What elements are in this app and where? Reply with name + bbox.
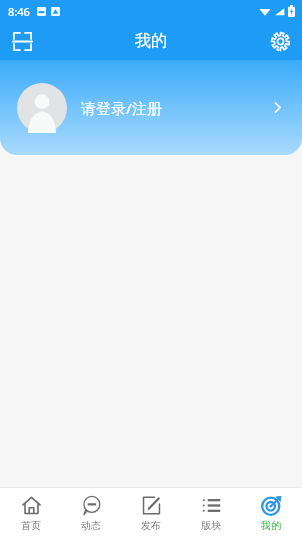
staticText: 请登录/注册: [81, 98, 162, 118]
button[interactable]: Settings: [263, 24, 297, 58]
button[interactable]: 请登录/注册: [0, 60, 302, 155]
staticText: 我的: [261, 519, 281, 532]
staticText: 8:46: [8, 4, 30, 19]
staticText: 我的: [135, 31, 167, 51]
button[interactable]: 首页: [2, 488, 60, 539]
button[interactable]: 版块: [182, 488, 240, 539]
button[interactable]: 我的: [242, 488, 300, 539]
staticText: 首页: [21, 519, 41, 532]
staticText: 动态: [81, 519, 101, 532]
button[interactable]: 发布: [122, 488, 180, 539]
button[interactable]: 动态: [62, 488, 120, 539]
staticText: 发布: [141, 519, 161, 532]
button[interactable]: Scan QR code: [5, 24, 39, 58]
staticText: 版块: [201, 519, 221, 532]
